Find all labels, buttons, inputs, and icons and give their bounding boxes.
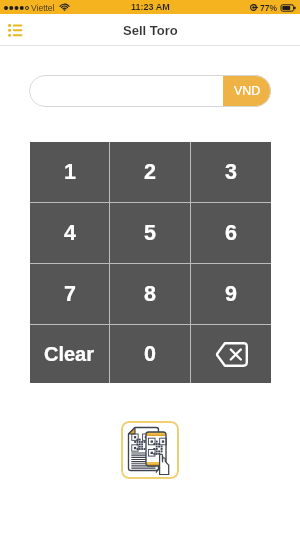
staticText: 6 [225,221,237,245]
staticText: Sell Toro [123,23,178,38]
staticText: 0 [144,342,156,366]
staticText: 5 [144,221,156,245]
staticText: 8 [144,282,156,306]
button[interactable]: Scan QR code [121,421,179,479]
staticText: 7 [64,282,76,306]
staticText: 11:23 AM [131,2,170,12]
staticText: 9 [225,282,237,306]
button[interactable]: 6 [191,203,271,263]
button[interactable]: 1 [30,142,109,202]
button[interactable]: 8 [110,264,190,324]
staticText: 77% [260,3,278,12]
staticText: 3 [225,160,237,184]
button[interactable]: 7 [30,264,109,324]
staticText: Viettel [31,3,55,12]
button[interactable]: 9 [191,264,271,324]
staticText: 2 [144,160,156,184]
button[interactable]: Menu [2,17,28,43]
button[interactable]: 5 [110,203,190,263]
button[interactable]: Backspace [191,325,271,383]
button[interactable]: 2 [110,142,190,202]
staticText: Clear [44,343,95,365]
button[interactable]: 4 [30,203,109,263]
button[interactable]: 3 [191,142,271,202]
other: Backspace [215,342,248,367]
staticText: 1 [64,160,76,184]
button[interactable]: Clear [30,325,109,383]
button[interactable]: 0 [110,325,190,383]
button[interactable]: VND [29,75,271,107]
staticText: 4 [64,221,76,245]
staticText: VND [234,84,261,98]
